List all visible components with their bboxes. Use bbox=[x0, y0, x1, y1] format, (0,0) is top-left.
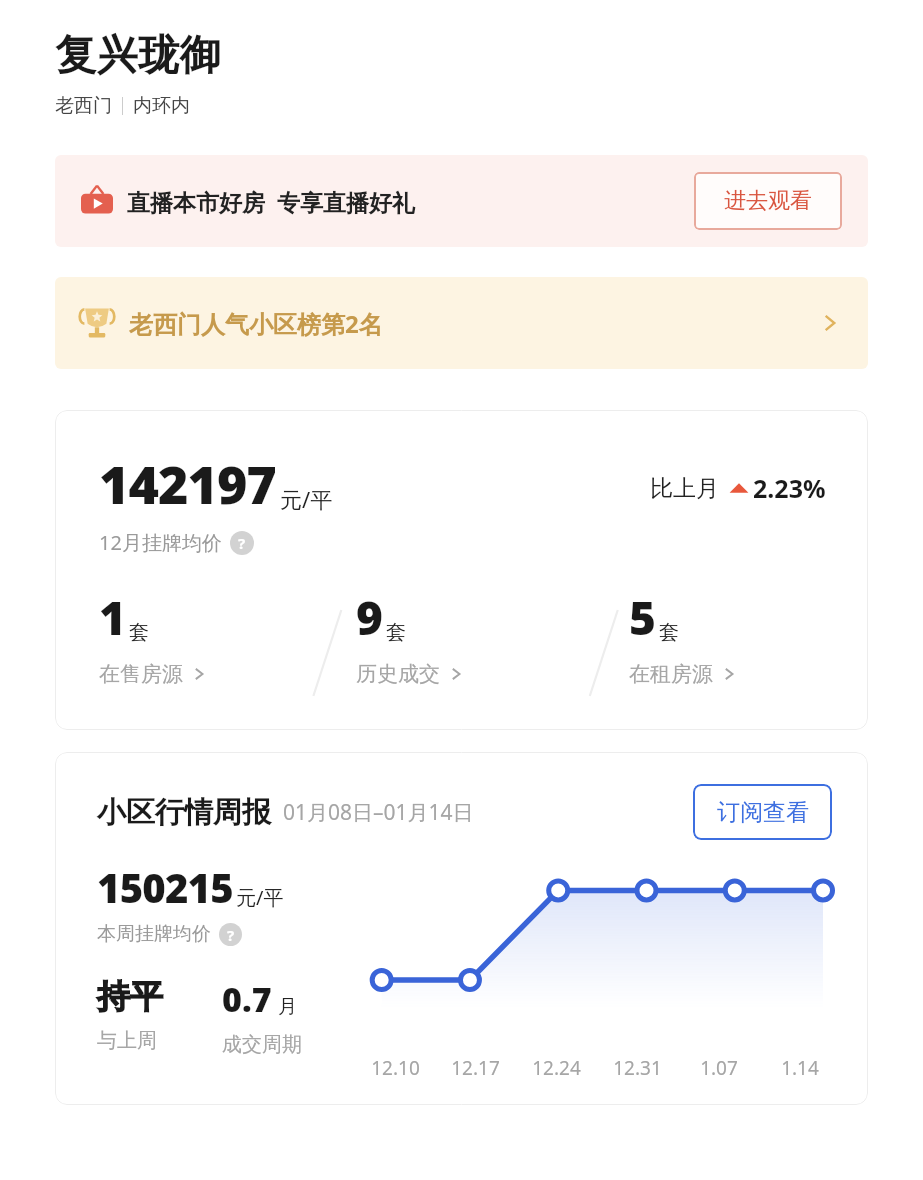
staticText: 12.17 bbox=[451, 1055, 500, 1081]
staticText: 12.10 bbox=[371, 1055, 420, 1081]
staticText: 在售房源 bbox=[99, 661, 183, 687]
staticText: 元/平 bbox=[236, 884, 284, 911]
staticText: 在租房源 bbox=[629, 661, 713, 687]
staticText: 12.24 bbox=[532, 1055, 581, 1081]
staticText: 2.23% bbox=[753, 471, 826, 505]
staticText: 12月挂牌均价 bbox=[99, 529, 222, 556]
staticText: 老西门人气小区榜第2名 bbox=[129, 307, 383, 340]
staticText: 持平 bbox=[97, 976, 163, 1018]
button[interactable]: 订阅查看 bbox=[693, 784, 832, 840]
button[interactable]: 进去观看 bbox=[694, 172, 842, 230]
staticText: 12.31 bbox=[613, 1055, 662, 1081]
staticText: 1 bbox=[99, 586, 126, 649]
staticText: 套 bbox=[386, 620, 406, 645]
staticText: ? bbox=[238, 533, 246, 553]
staticText: 150215 bbox=[97, 860, 233, 914]
staticText: 1.07 bbox=[700, 1055, 738, 1081]
staticText: 复兴珑御 bbox=[55, 30, 221, 82]
staticText: 月 bbox=[278, 995, 297, 1019]
staticText: 5 bbox=[629, 586, 656, 649]
staticText: 与上周 bbox=[97, 1028, 157, 1053]
staticText: 套 bbox=[659, 620, 679, 645]
staticText: 元/平 bbox=[280, 484, 333, 514]
staticText: 9 bbox=[356, 586, 383, 649]
staticText: ? bbox=[227, 925, 235, 945]
staticText: 内环内 bbox=[133, 94, 190, 118]
staticText: 老西门 bbox=[55, 94, 112, 118]
button[interactable]: 9 bbox=[326, 586, 597, 716]
staticText: 进去观看 bbox=[724, 187, 812, 215]
staticText: 1.14 bbox=[781, 1055, 819, 1081]
button[interactable]: 直播本市好房 专享直播好礼 bbox=[55, 155, 868, 247]
staticText: 小区行情周报 bbox=[97, 794, 271, 831]
staticText: 成交周期 bbox=[222, 1032, 302, 1057]
button[interactable]: 5 bbox=[597, 586, 868, 716]
staticText: 比上月 bbox=[650, 474, 719, 503]
staticText: 01月08日–01月14日 bbox=[283, 798, 474, 827]
staticText: 套 bbox=[129, 620, 149, 645]
staticText: 142197 bbox=[99, 448, 276, 519]
staticText: 订阅查看 bbox=[717, 798, 809, 827]
button[interactable]: 142197 bbox=[55, 410, 868, 730]
button[interactable]: 小区行情周报 bbox=[55, 752, 868, 1105]
button[interactable]: 1 bbox=[55, 586, 326, 716]
staticText: 0.7 bbox=[222, 976, 272, 1022]
button[interactable]: 老西门人气小区榜第2名 bbox=[55, 277, 868, 369]
staticText: 本周挂牌均价 bbox=[97, 922, 211, 946]
staticText: 直播本市好房 专享直播好礼 bbox=[127, 186, 415, 217]
staticText: 历史成交 bbox=[356, 661, 440, 687]
